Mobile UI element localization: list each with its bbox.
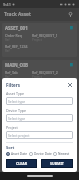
staticText: Project	[6, 125, 18, 130]
staticText: Ref	[5, 38, 10, 42]
button[interactable]: Newest	[53, 152, 73, 156]
button[interactable]: Select type	[6, 114, 73, 122]
staticText: CLEAR	[16, 161, 28, 166]
staticText: Ref_REF_1234	[5, 44, 28, 49]
staticText: SUBMIT	[50, 161, 64, 166]
button[interactable]: CLEAR	[6, 159, 37, 168]
button[interactable]: Device Date	[29, 152, 53, 156]
button[interactable]: S_2528	[2, 97, 77, 120]
staticText: Ref	[5, 49, 10, 53]
button[interactable]: ASSET_001	[2, 23, 77, 57]
button[interactable]: MAIN_OIB	[2, 60, 77, 94]
staticText: Track Asset	[4, 11, 31, 18]
button[interactable]: Select project	[6, 131, 73, 139]
staticText: Filters	[6, 82, 21, 88]
staticText: 1700/SYSTEM	[5, 81, 28, 86]
staticText: Select type	[8, 116, 26, 121]
staticText: Select project	[8, 133, 30, 138]
staticText: Ref	[5, 107, 11, 112]
staticText: MAIN_OIB	[5, 62, 28, 68]
staticText: S_2528	[5, 99, 20, 105]
button[interactable]: Close	[66, 81, 73, 88]
staticText: Ref	[5, 86, 10, 90]
staticText: Ref_REQUEST_1	[32, 33, 58, 38]
staticText: Ref_Tab	[5, 70, 18, 75]
staticText: Order Req	[5, 33, 22, 38]
button[interactable]: Asset Date	[6, 152, 29, 156]
staticText: Device Type	[6, 108, 27, 113]
staticText: Project	[32, 112, 42, 116]
button[interactable]: SUBMIT	[41, 159, 73, 168]
staticText: Sort	[6, 145, 15, 150]
staticText: Select type	[8, 99, 26, 104]
button[interactable]: Filter	[66, 10, 75, 19]
staticText: Asset Date	[11, 152, 27, 156]
staticText: Project	[32, 38, 42, 42]
staticText: Ref	[5, 112, 10, 116]
button[interactable]: Select type	[6, 97, 73, 105]
staticText: Ref	[5, 75, 10, 79]
staticText: Ref_REQUEST_2	[32, 70, 58, 75]
staticText: ASSET_001	[5, 25, 28, 31]
staticText: Project	[32, 75, 42, 79]
staticText: 9:41	[3, 2, 11, 7]
staticText: Device Date	[34, 152, 52, 156]
staticText: Asset Type	[6, 91, 24, 96]
staticText: Newest	[58, 152, 70, 156]
